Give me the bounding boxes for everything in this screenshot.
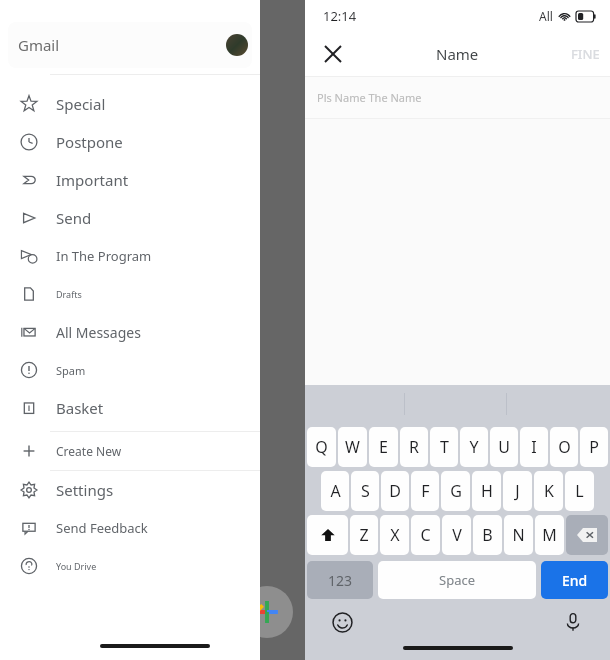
staticText: Spam	[56, 363, 86, 378]
staticText: V	[452, 524, 462, 546]
staticText: C	[420, 524, 431, 546]
staticText: I	[531, 436, 537, 458]
button[interactable]: P	[580, 427, 608, 467]
button[interactable]: 123	[307, 561, 373, 599]
button[interactable]: X	[380, 515, 409, 555]
staticText: O	[558, 436, 571, 458]
button[interactable]: Important	[0, 161, 260, 199]
button[interactable]: Space	[378, 561, 536, 599]
button[interactable]: U	[490, 427, 518, 467]
button[interactable]: B	[473, 515, 502, 555]
staticText: All	[539, 8, 553, 24]
staticText: Y	[469, 436, 479, 458]
staticText: Settings	[56, 480, 114, 500]
staticText: E	[379, 436, 388, 458]
staticText: W	[345, 436, 360, 458]
button[interactable]: FINE	[571, 45, 600, 63]
button[interactable]: N	[504, 515, 533, 555]
staticText: Send Feedback	[56, 519, 148, 537]
staticText: Space	[439, 571, 475, 589]
staticText: B	[482, 524, 493, 546]
staticText: R	[409, 436, 419, 458]
staticText: Important	[56, 170, 129, 190]
button[interactable]: R	[400, 427, 428, 467]
staticText: N	[512, 524, 525, 546]
button[interactable]: Send Feedback	[0, 509, 260, 547]
button[interactable]: You Drive	[0, 547, 260, 585]
button[interactable]: A	[321, 471, 349, 511]
staticText: 12:14	[323, 7, 357, 25]
staticText: H	[481, 480, 493, 502]
button[interactable]: Emoji	[327, 607, 357, 637]
button[interactable]: F	[411, 471, 439, 511]
button[interactable]: Drafts	[0, 275, 260, 313]
staticText: FINE	[571, 45, 600, 63]
staticText: A	[330, 480, 341, 502]
staticText: Z	[359, 524, 369, 546]
button[interactable]: Send	[0, 199, 260, 237]
staticText: T	[440, 436, 449, 458]
staticText: L	[575, 480, 584, 502]
staticText: S	[361, 480, 370, 502]
button[interactable]: Shift	[307, 515, 348, 555]
button[interactable]: Q	[307, 427, 336, 467]
button[interactable]: Spam	[0, 351, 260, 389]
staticText: Create New	[56, 443, 122, 459]
button[interactable]: T	[430, 427, 458, 467]
staticText: End	[562, 571, 588, 590]
button[interactable]: Create New	[0, 432, 260, 470]
staticText: 0/4/19	[259, 120, 287, 132]
staticText: Drafts	[56, 288, 82, 300]
button[interactable]: Gmail	[8, 22, 252, 68]
button[interactable]: G	[441, 471, 470, 511]
staticText: Special	[56, 94, 106, 114]
staticText: Pls Name The Name	[317, 90, 422, 105]
button[interactable]: V	[442, 515, 471, 555]
button[interactable]: Z	[350, 515, 378, 555]
staticText: X	[390, 524, 400, 546]
button[interactable]: Special	[0, 85, 260, 123]
staticText: In The Program	[56, 247, 152, 265]
button[interactable]: D	[381, 471, 409, 511]
button[interactable]: Compose	[241, 586, 293, 638]
button[interactable]: Postpone	[0, 123, 260, 161]
staticText: P	[589, 436, 599, 458]
staticText: G	[450, 480, 462, 502]
button[interactable]: Basket	[0, 389, 260, 427]
button[interactable]: W	[338, 427, 367, 467]
staticText: Gmail	[18, 35, 60, 55]
button[interactable]: Close	[315, 36, 351, 72]
staticText: J	[515, 480, 520, 502]
button[interactable]: Voice input	[558, 607, 588, 637]
staticText: 123	[328, 571, 353, 590]
staticText: Send	[56, 208, 92, 228]
button[interactable]: E	[369, 427, 398, 467]
staticText: You Drive	[56, 560, 97, 572]
button[interactable]: Backspace	[566, 515, 608, 555]
button[interactable]: I	[520, 427, 548, 467]
button[interactable]: J	[503, 471, 532, 511]
staticText: D	[389, 480, 401, 502]
button[interactable]: L	[565, 471, 594, 511]
staticText: U	[498, 436, 510, 458]
button[interactable]: H	[472, 471, 501, 511]
button[interactable]: M	[535, 515, 564, 555]
button[interactable]: Settings	[0, 471, 260, 509]
button[interactable]: Y	[460, 427, 488, 467]
button[interactable]: C	[411, 515, 440, 555]
staticText: Name	[436, 44, 479, 64]
staticText: F	[421, 480, 430, 502]
staticText: All Messages	[56, 323, 141, 342]
staticText: M	[542, 524, 557, 546]
button[interactable]: K	[534, 471, 563, 511]
button[interactable]: All Messages	[0, 313, 260, 351]
staticText: Q	[315, 436, 328, 458]
button[interactable]: In The Program	[0, 237, 260, 275]
button[interactable]: O	[550, 427, 578, 467]
staticText: Basket	[56, 398, 104, 418]
button[interactable]: End	[541, 561, 608, 599]
staticText: K	[544, 480, 554, 502]
button[interactable]: S	[351, 471, 379, 511]
staticText: Postpone	[56, 132, 123, 152]
